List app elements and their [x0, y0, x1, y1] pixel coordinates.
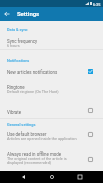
button[interactable] [0, 34, 103, 49]
staticText: Use default browser [7, 132, 47, 137]
staticText: Articles are opened inside the applicati… [7, 136, 77, 140]
staticText: Notifications [7, 58, 30, 63]
button[interactable] [0, 105, 103, 118]
button[interactable]: Always read in offline mode [85, 154, 96, 165]
staticText: 6 hours [7, 43, 20, 47]
button[interactable]: Navigate up [0, 7, 14, 21]
staticText: New articles notifications [7, 70, 58, 75]
staticText: The original content of the article is [7, 156, 67, 160]
button[interactable]: Recents [74, 171, 86, 183]
button[interactable]: New articles notifications [85, 66, 96, 77]
button[interactable] [0, 65, 103, 78]
staticText: Settings [17, 10, 40, 17]
staticText: Data & sync [7, 27, 28, 32]
button[interactable] [0, 81, 103, 96]
staticText: Default ringtone (On The Hunt) [7, 89, 59, 93]
staticText: Vibrate [7, 110, 22, 115]
button[interactable]: Home [46, 171, 58, 183]
staticText: Always read in offline mode [7, 152, 62, 157]
staticText: General settings [7, 122, 36, 127]
button[interactable]: Use default browser [85, 129, 96, 140]
button[interactable] [0, 129, 103, 143]
staticText: Ringtone [7, 85, 25, 90]
button[interactable]: Back [17, 171, 29, 183]
staticText: Sync frequency [7, 39, 38, 44]
button[interactable] [0, 149, 103, 169]
staticText: 6:35 [93, 2, 101, 6]
button[interactable]: Vibrate [85, 105, 96, 116]
staticText: displayed (recommended) [7, 160, 52, 164]
